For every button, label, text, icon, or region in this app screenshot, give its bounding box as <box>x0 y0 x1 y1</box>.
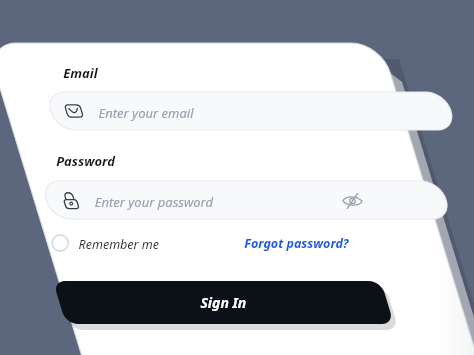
button[interactable]: Enter your email <box>90 92 410 130</box>
button[interactable]: Show password <box>330 185 362 217</box>
button[interactable]: Forgot password? <box>232 231 336 257</box>
button[interactable]: Enter your password <box>58 181 358 219</box>
button[interactable]: Sign In <box>14 281 344 325</box>
button[interactable]: Remember me <box>28 231 168 257</box>
